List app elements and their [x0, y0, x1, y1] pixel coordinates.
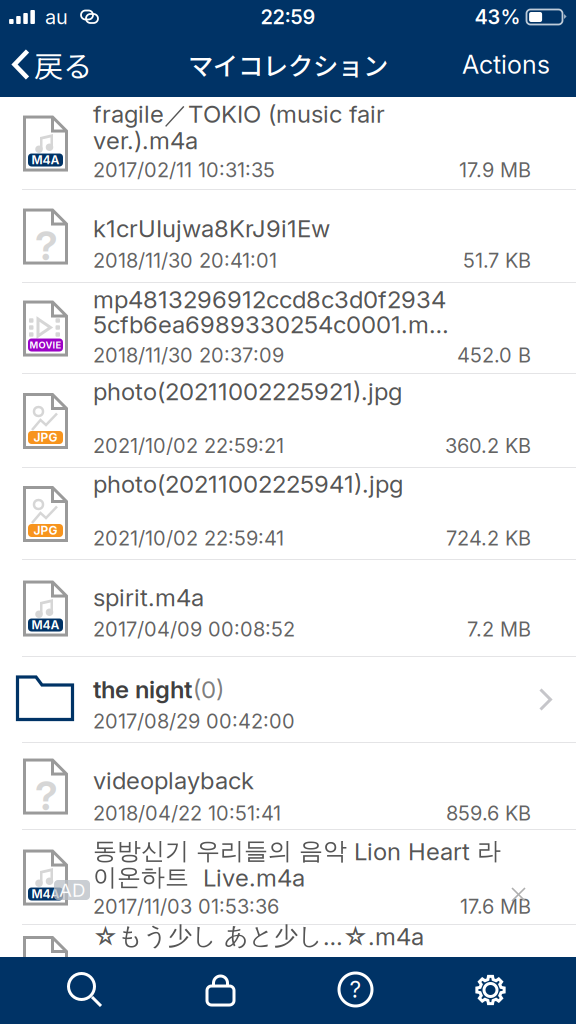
button[interactable]: MOVIE: [0, 0, 576, 1024]
staticText: ?: [35, 221, 58, 270]
staticText: 22:59: [260, 5, 315, 29]
staticText: mp4813296912ccd8c3d0f2934: [93, 285, 446, 314]
staticText: MOVIE: [29, 339, 61, 351]
staticText: 360.2 KB: [445, 433, 531, 458]
staticText: 2017/04/09 00:08:52: [93, 617, 295, 641]
staticText: 5cfb6ea6989330254c0001.m…: [93, 310, 449, 339]
staticText: 2021/10/02 22:59:41: [93, 526, 284, 550]
staticText: videoplayback: [93, 766, 254, 795]
staticText: photo(20211002225941).jpg: [93, 469, 403, 498]
button[interactable]: ?: [0, 0, 576, 1024]
staticText: 17.9 MB: [459, 158, 531, 182]
staticText: AD: [59, 879, 85, 901]
button[interactable]: Actions: [448, 33, 576, 96]
staticText: M4A: [31, 153, 59, 167]
staticText: 2018/04/22 10:51:41: [93, 801, 281, 825]
staticText: M4A: [31, 887, 59, 901]
staticText: au: [45, 5, 68, 29]
button[interactable]: the night: [0, 0, 576, 1024]
staticText: (0): [193, 675, 224, 704]
staticText: 859.6 KB: [446, 801, 531, 825]
button[interactable]: M4A: [0, 0, 576, 1024]
staticText: fragile／TOKIO (music fair: [93, 100, 385, 130]
staticText: 동방신기 우리들의 음악 Lion Heart 라: [93, 836, 501, 866]
button[interactable]: M4A: [0, 0, 576, 1024]
staticText: ver.).m4a: [93, 126, 198, 155]
staticText: 452.0 B: [457, 343, 531, 367]
staticText: 2017/08/29 00:42:00: [93, 709, 295, 733]
button[interactable]: Help: [288, 957, 423, 1024]
button[interactable]: ?: [0, 0, 576, 1024]
button[interactable]: Settings: [423, 957, 558, 1024]
staticText: ?: [35, 771, 58, 820]
staticText: 2018/11/30 20:41:01: [93, 248, 277, 273]
staticText: ☆もう少し あと少し…☆.m4a: [93, 921, 424, 951]
staticText: 2021/10/02 22:59:21: [93, 433, 284, 458]
staticText: 17.6 MB: [460, 894, 531, 919]
staticText: 戻る: [34, 43, 92, 86]
button[interactable]: M4A: [0, 0, 576, 1024]
button[interactable]: Lock: [153, 957, 288, 1024]
staticText: ?: [349, 976, 361, 1003]
staticText: JPG: [33, 523, 57, 538]
staticText: k1crUIujwa8KrJ9i1Ew: [93, 214, 330, 243]
staticText: 2018/11/30 20:37:09: [93, 343, 284, 367]
staticText: 43%: [474, 5, 520, 29]
button[interactable]: JPG: [0, 0, 576, 1024]
staticText: 2017/11/03 01:53:36: [93, 894, 279, 919]
staticText: 이온하트 Live.m4a: [93, 862, 305, 892]
staticText: マイコレクション: [188, 46, 388, 83]
staticText: the night: [93, 675, 192, 704]
staticText: 724.2 KB: [446, 526, 531, 550]
staticText: 2017/02/11 10:31:35: [93, 158, 275, 182]
button[interactable]: Close ad: [508, 884, 529, 905]
button[interactable]: Search: [18, 957, 153, 1024]
button[interactable]: JPG: [0, 0, 576, 1024]
staticText: photo(20211002225921).jpg: [93, 377, 402, 406]
staticText: M4A: [31, 618, 59, 632]
staticText: spirit.m4a: [93, 583, 204, 612]
button[interactable]: 戻る: [0, 33, 104, 96]
staticText: Actions: [462, 49, 550, 80]
staticText: 51.7 KB: [463, 248, 531, 273]
staticText: JPG: [33, 430, 57, 445]
staticText: 7.2 MB: [467, 617, 531, 641]
